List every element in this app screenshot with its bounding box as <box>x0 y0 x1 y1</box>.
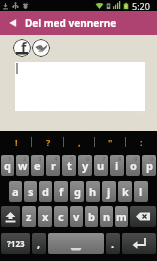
staticText: Del med vennerne <box>25 16 117 30</box>
button[interactable]: " <box>95 131 126 153</box>
staticText: b <box>88 209 95 224</box>
staticText: x <box>42 209 49 224</box>
button[interactable]: Back <box>0 11 25 35</box>
button[interactable]: q <box>1 155 14 176</box>
staticText: 0 <box>150 155 154 163</box>
button[interactable]: Shift <box>1 206 20 227</box>
staticText: f <box>59 184 64 199</box>
button[interactable]: a <box>9 181 22 202</box>
staticText: 1 <box>8 155 12 163</box>
staticText: t <box>67 158 72 173</box>
staticText: p <box>146 158 153 173</box>
staticText: ? <box>46 136 51 148</box>
button[interactable]: Enter <box>122 233 156 254</box>
button[interactable]: w <box>16 155 29 176</box>
button[interactable]: e <box>31 155 44 176</box>
staticText: l <box>139 184 143 199</box>
button[interactable]: j <box>102 181 116 202</box>
staticText: 7 <box>102 155 106 163</box>
staticText: " <box>108 136 113 148</box>
button[interactable]: Share on Twitter <box>32 39 50 57</box>
staticText: , <box>37 236 41 251</box>
staticText: r <box>51 158 56 173</box>
staticText: c <box>58 209 64 224</box>
button[interactable]: y <box>78 155 92 176</box>
button[interactable]: c <box>54 206 68 227</box>
staticText: , <box>78 136 81 148</box>
button[interactable]: o <box>126 155 140 176</box>
button[interactable]: s <box>24 181 37 202</box>
staticText: v <box>73 209 80 224</box>
button[interactable]: x <box>38 206 52 227</box>
button[interactable]: g <box>70 181 84 202</box>
button[interactable]: p <box>142 155 156 176</box>
staticText: u <box>97 158 105 173</box>
button[interactable]: l <box>134 181 148 202</box>
staticText: 3 <box>38 155 42 163</box>
staticText: 9 <box>134 155 138 163</box>
button[interactable]: m <box>115 206 128 227</box>
button[interactable]: ? <box>32 131 64 153</box>
button[interactable]: . <box>106 233 120 254</box>
button[interactable]: b <box>85 206 98 227</box>
button[interactable]: r <box>46 155 60 176</box>
staticText: d <box>42 184 49 199</box>
staticText: a <box>12 184 19 199</box>
button[interactable]: ! <box>0 131 32 153</box>
staticText: k <box>122 184 129 199</box>
button[interactable]: i <box>110 155 124 176</box>
button[interactable]: n <box>100 206 113 227</box>
staticText: m <box>116 209 127 224</box>
staticText: 2 <box>23 155 27 163</box>
staticText: 5 <box>70 155 74 163</box>
button[interactable]: : <box>126 131 157 153</box>
staticText: 4 <box>54 155 58 163</box>
staticText: 6 <box>86 155 90 163</box>
button[interactable]: f <box>54 181 68 202</box>
button[interactable]: d <box>39 181 52 202</box>
staticText: f <box>21 39 27 56</box>
staticText: j <box>107 184 111 199</box>
button[interactable]: u <box>94 155 108 176</box>
staticText: z <box>26 209 32 224</box>
staticText: ?123 <box>7 238 25 249</box>
button[interactable]: Space <box>48 233 104 254</box>
staticText: h <box>89 184 97 199</box>
button[interactable]: z <box>22 206 36 227</box>
button[interactable]: , <box>64 131 95 153</box>
button[interactable]: v <box>70 206 83 227</box>
button[interactable]: h <box>86 181 100 202</box>
staticText: g <box>74 184 81 199</box>
staticText: n <box>103 209 111 224</box>
staticText: e <box>34 158 41 173</box>
button[interactable]: Share on Facebook <box>13 39 31 57</box>
staticText: : <box>140 136 143 148</box>
staticText: y <box>82 158 89 173</box>
staticText: w <box>18 158 28 173</box>
button[interactable]: k <box>118 181 132 202</box>
staticText: 5:20 <box>132 0 150 11</box>
staticText: i <box>115 158 119 173</box>
button[interactable]: Delete <box>130 206 156 227</box>
staticText: . <box>111 236 115 251</box>
staticText: q <box>4 158 11 173</box>
button[interactable]: , <box>32 233 46 254</box>
button[interactable]: ?123 <box>1 233 30 254</box>
staticText: s <box>28 184 34 199</box>
staticText: ! <box>15 136 18 148</box>
staticText: 8 <box>118 155 122 163</box>
staticText: o <box>130 158 137 173</box>
button[interactable]: t <box>62 155 76 176</box>
